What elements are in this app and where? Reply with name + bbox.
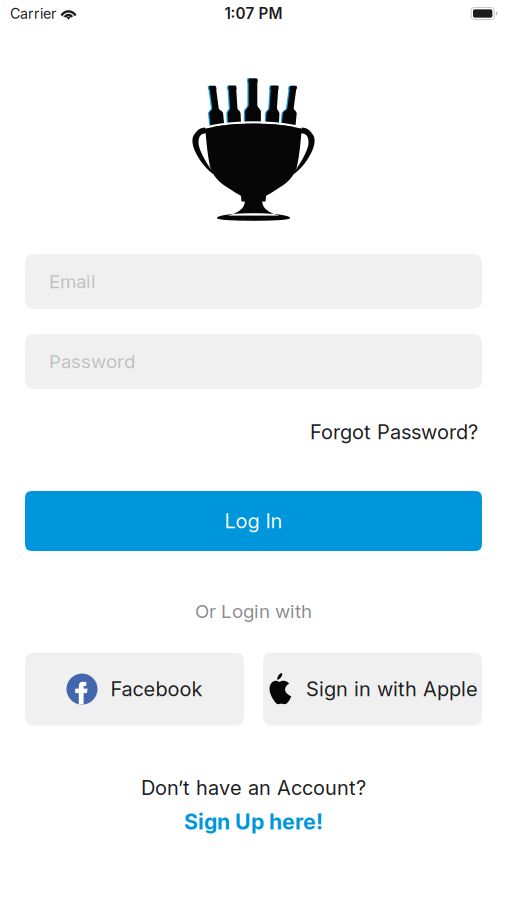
staticText: Password [49, 350, 135, 373]
button[interactable]: Forgot Password? [0, 417, 507, 447]
staticText: Facebook [110, 677, 202, 701]
staticText: Don’t have an Account? [141, 776, 366, 800]
button[interactable]: Facebook [25, 653, 244, 726]
staticText: Sign Up here! [184, 809, 323, 835]
staticText: Email [49, 270, 96, 293]
button[interactable]: Sign Up here! [184, 810, 323, 834]
staticText: Sign in with Apple [306, 677, 478, 701]
staticText: Forgot Password? [310, 420, 478, 444]
staticText: 1:07 PM [224, 4, 282, 23]
button[interactable]: Sign in with Apple [263, 653, 482, 726]
button[interactable]: Log In [0, 491, 507, 551]
staticText: Log In [224, 509, 282, 533]
staticText: Or Login with [195, 600, 312, 623]
staticText: Carrier [10, 5, 56, 22]
